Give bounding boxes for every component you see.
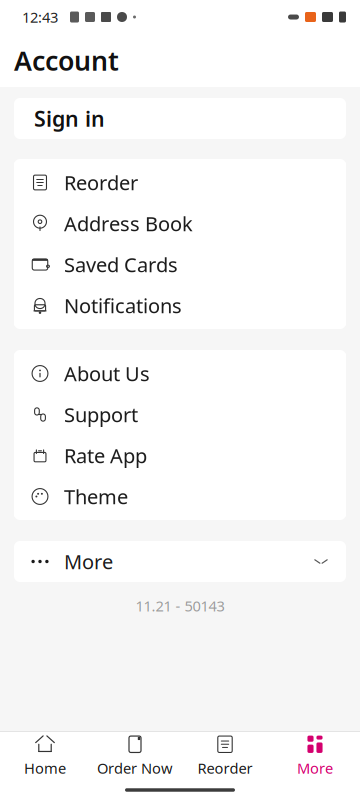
staticText: Rate App [64, 442, 147, 469]
button[interactable]: Sign in [14, 98, 346, 139]
staticText: More [64, 548, 113, 575]
button[interactable]: About Us [14, 353, 346, 394]
staticText: Order Now [97, 758, 173, 778]
staticText: More [297, 758, 333, 778]
button[interactable]: Rate App [14, 435, 346, 476]
staticText: Theme [64, 483, 128, 510]
staticText: Home [24, 758, 66, 778]
staticText: Reorder [197, 758, 252, 778]
staticText: 11.21 - 50143 [135, 596, 224, 615]
staticText: About Us [64, 360, 150, 387]
button[interactable]: More [14, 541, 346, 582]
staticText: Sign in [34, 104, 105, 133]
staticText: Support [64, 401, 138, 428]
button[interactable]: More [270, 732, 360, 780]
button[interactable]: Home [0, 732, 90, 780]
staticText: Account [14, 43, 119, 78]
button[interactable]: Saved Cards [14, 244, 346, 285]
button[interactable]: Address Book [14, 203, 346, 244]
button[interactable]: Support [14, 394, 346, 435]
staticText: Notifications [64, 292, 182, 319]
button[interactable]: Theme [14, 476, 346, 517]
button[interactable]: Notifications [14, 285, 346, 326]
staticText: Reorder [64, 169, 138, 196]
staticText: Address Book [64, 210, 193, 237]
button[interactable]: Reorder [14, 162, 346, 203]
button[interactable]: Order Now [90, 732, 180, 780]
staticText: Saved Cards [64, 251, 178, 278]
staticText: 12:43 [22, 7, 58, 27]
button[interactable]: Reorder [180, 732, 270, 780]
